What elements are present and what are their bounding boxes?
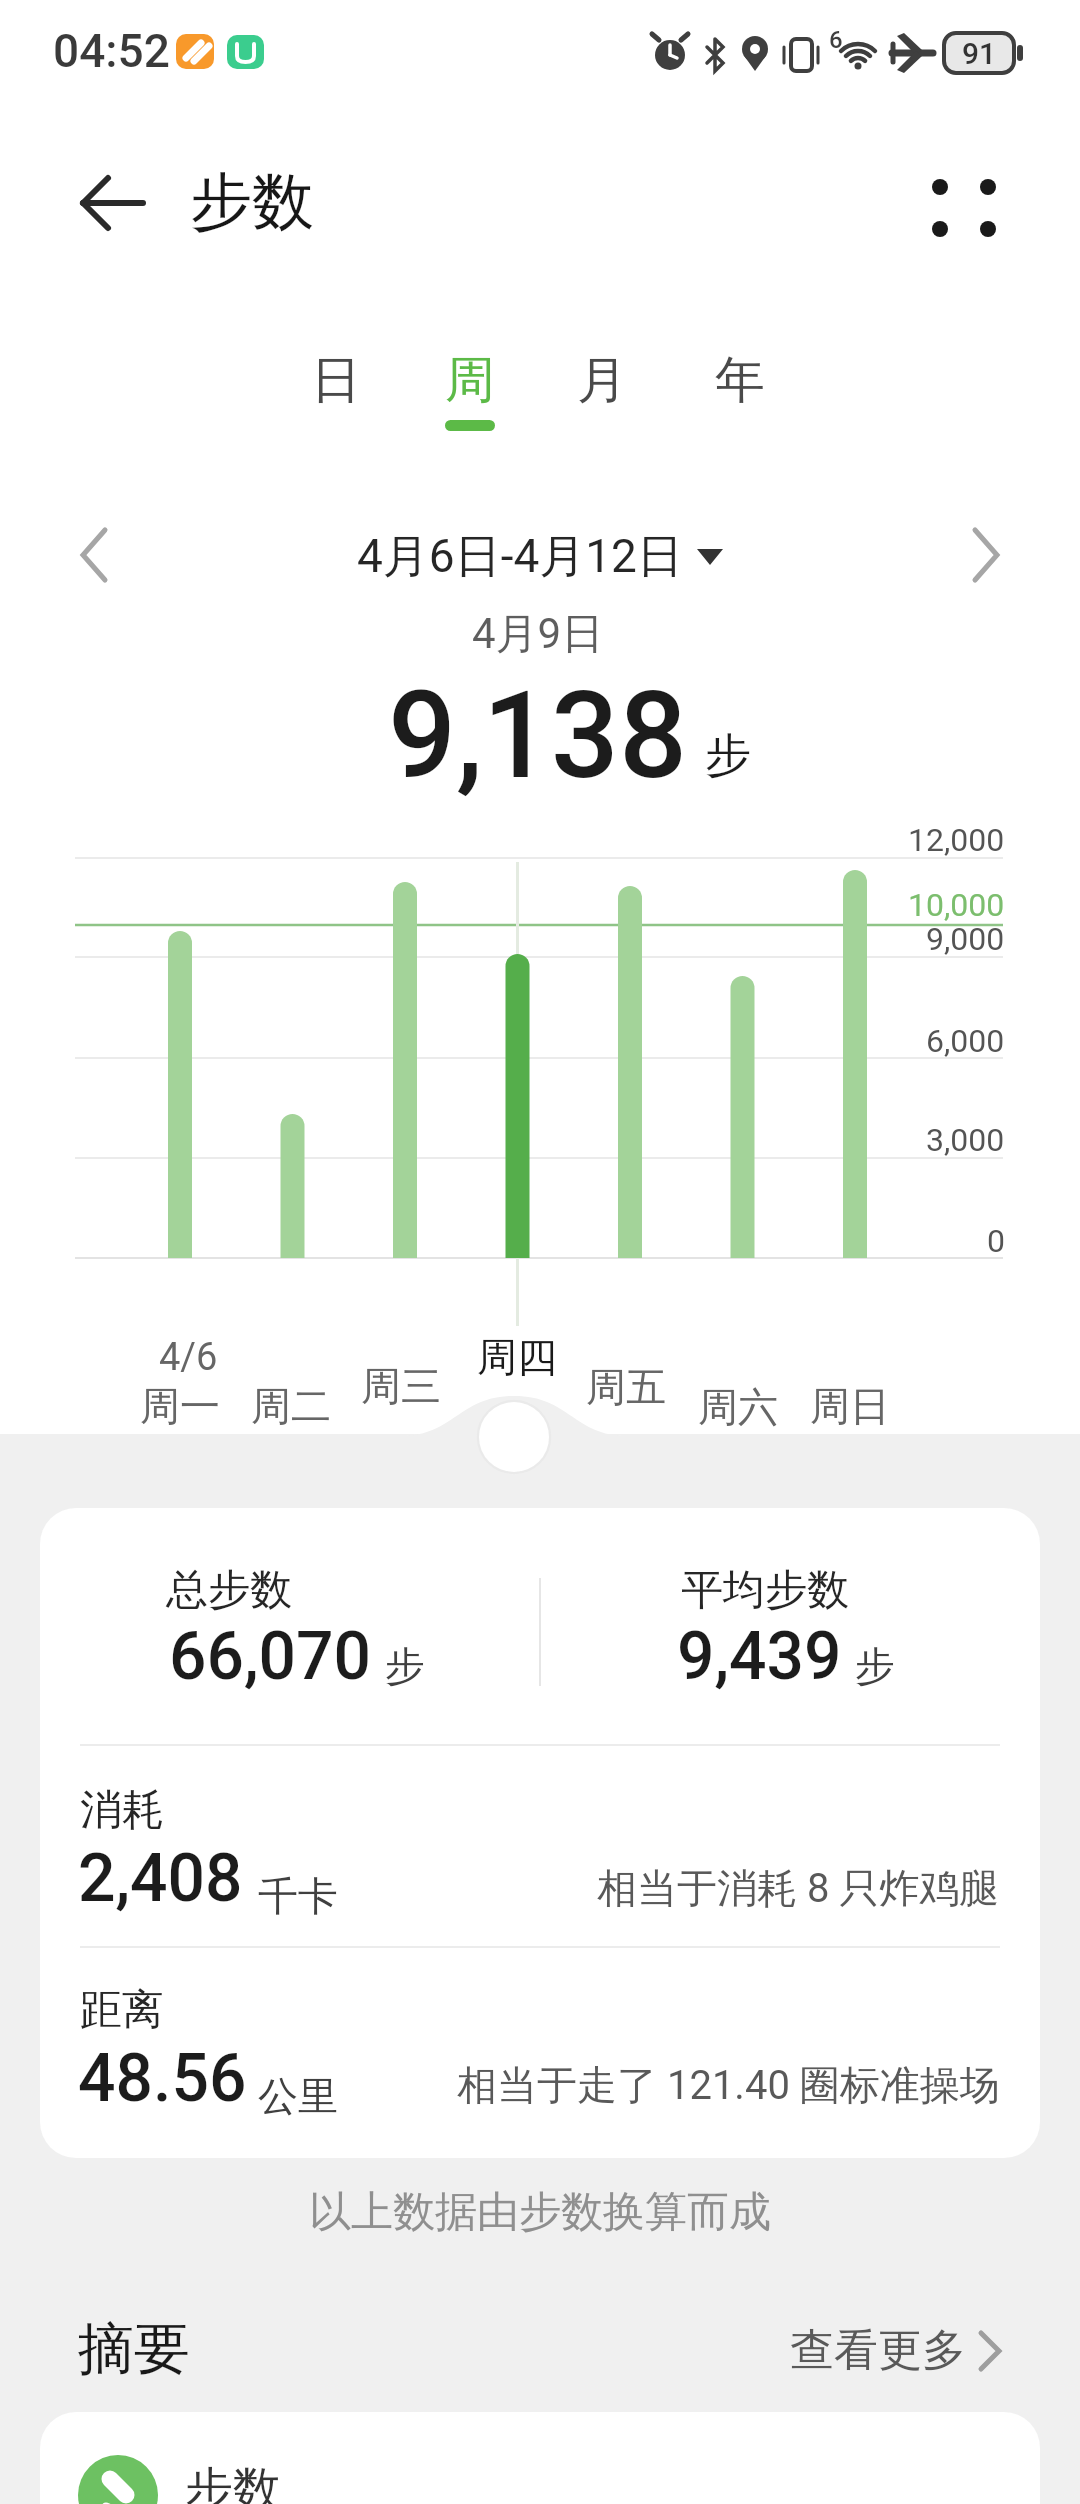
button[interactable]: 查看更多 <box>745 2312 1002 2388</box>
staticText: 10,000 <box>908 886 1005 924</box>
staticText: 6,000 <box>926 1022 1005 1060</box>
staticText: 平均步数 <box>681 1564 849 1617</box>
staticText: 周一 <box>140 1381 220 1431</box>
staticText: 66,070 <box>169 1618 372 1695</box>
staticText: 2,408 <box>78 1840 243 1917</box>
staticText: 步数 <box>190 163 314 241</box>
staticText: 48.56 <box>78 2040 247 2117</box>
staticText: 9,138 <box>388 666 688 807</box>
button[interactable]: 月 <box>542 340 662 420</box>
staticText: 04:52 <box>53 24 170 78</box>
staticText: 消耗 <box>80 1784 164 1837</box>
button[interactable] <box>479 1402 549 1472</box>
staticText: 周六 <box>698 1382 778 1432</box>
button[interactable] <box>40 2412 1040 2504</box>
staticText: 步 <box>855 1641 895 1691</box>
staticText: 4月9日 <box>472 608 604 661</box>
button[interactable]: 日 <box>276 340 396 420</box>
button[interactable] <box>55 160 155 250</box>
staticText: 步 <box>705 727 751 785</box>
staticText: 4月6日-4月12日 <box>357 528 683 586</box>
staticText: 步 <box>385 1641 425 1691</box>
staticText: 相当于消耗 8 只炸鸡腿 <box>597 1863 1000 1913</box>
staticText: 步数 <box>185 2460 281 2504</box>
staticText: 9,439 <box>677 1618 842 1695</box>
staticText: 6 <box>829 26 843 54</box>
staticText: 周二 <box>251 1381 331 1431</box>
staticText: 周四 <box>477 1332 557 1382</box>
staticText: 总步数 <box>166 1564 292 1617</box>
staticText: 3,000 <box>926 1121 1005 1159</box>
staticText: 4/6 <box>159 1335 218 1380</box>
staticText: 日 <box>311 349 361 412</box>
staticText: 周 <box>445 349 495 412</box>
staticText: 距离 <box>80 1984 164 2037</box>
button[interactable] <box>905 160 1015 255</box>
staticText: 公里 <box>258 2071 338 2121</box>
staticText: 月 <box>577 349 627 412</box>
staticText: 摘要 <box>78 2314 190 2385</box>
staticText: 千卡 <box>258 1871 338 1921</box>
button[interactable]: 周 <box>410 340 530 420</box>
staticText: 91 <box>962 36 997 71</box>
staticText: 0 <box>987 1222 1005 1260</box>
staticText: 12,000 <box>908 821 1005 859</box>
button[interactable] <box>55 515 130 595</box>
staticText: 相当于走了 121.40 圈标准操场 <box>457 2060 1000 2110</box>
button[interactable] <box>950 515 1025 595</box>
button[interactable]: 年 <box>680 340 800 420</box>
staticText: 周三 <box>361 1361 441 1411</box>
staticText: 周日 <box>810 1381 890 1431</box>
staticText: 查看更多 <box>790 2323 966 2378</box>
staticText: 周五 <box>586 1362 666 1412</box>
staticText: 年 <box>715 349 765 412</box>
staticText: 以上数据由步数换算而成 <box>309 2186 771 2239</box>
staticText: 9,000 <box>926 920 1005 958</box>
button[interactable]: 4月6日-4月12日 <box>310 518 770 596</box>
